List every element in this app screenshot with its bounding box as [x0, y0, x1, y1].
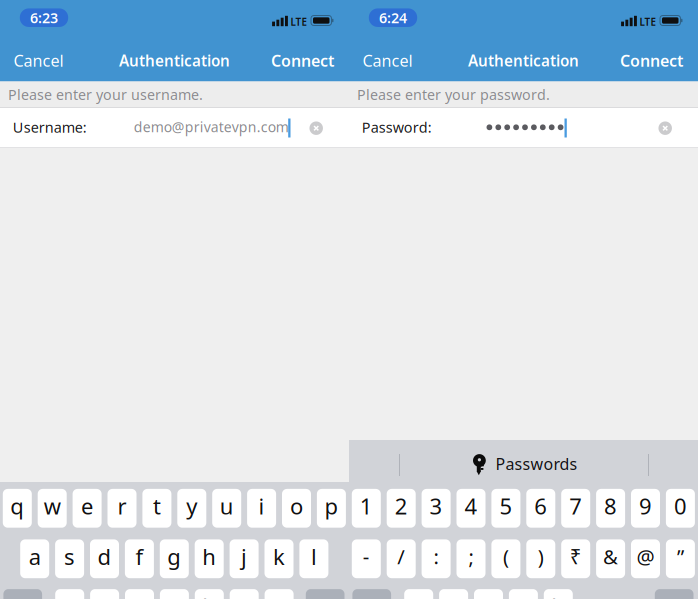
button[interactable]: 8 [596, 489, 625, 528]
button[interactable]: 2 [387, 489, 416, 528]
staticText: ) [538, 543, 544, 570]
button[interactable]: v [160, 589, 189, 599]
staticText: - [363, 543, 370, 570]
button[interactable]: Connect [255, 39, 349, 82]
staticText: 9 [639, 491, 652, 521]
button[interactable]: y [177, 489, 206, 528]
button[interactable]: Connect [604, 39, 698, 82]
button[interactable]: Delete [306, 589, 344, 599]
button[interactable]: Shift [352, 589, 391, 599]
button[interactable]: f [125, 539, 154, 578]
button[interactable]: - [352, 539, 381, 578]
button[interactable]: 4 [456, 489, 485, 528]
button[interactable]: p [317, 489, 346, 528]
button[interactable]: e [73, 489, 102, 528]
staticText: Username: [13, 117, 87, 137]
button[interactable]: 3 [422, 489, 451, 528]
button[interactable]: v [509, 589, 538, 599]
button[interactable]: k [264, 539, 293, 578]
staticText: 6 [534, 491, 547, 521]
staticText: ” [677, 543, 684, 570]
button[interactable]: z [404, 589, 433, 599]
button[interactable]: ( [491, 539, 520, 578]
staticText: j [241, 541, 247, 571]
button[interactable]: 1 [352, 489, 381, 528]
staticText: LTE [639, 15, 656, 29]
staticText: h [202, 541, 216, 571]
staticText: e [81, 491, 93, 521]
button[interactable]: z [55, 589, 84, 599]
staticText: 5 [499, 491, 512, 521]
button[interactable]: c [474, 589, 503, 599]
staticText: p [324, 491, 338, 521]
button[interactable]: @ [631, 539, 660, 578]
staticText: & [603, 543, 618, 570]
button[interactable]: l [299, 539, 328, 578]
staticText: Please enter your username. [8, 85, 203, 104]
button[interactable]: g [160, 539, 189, 578]
button[interactable]: Delete [655, 589, 693, 599]
button[interactable]: w [38, 489, 67, 528]
staticText: q [10, 491, 24, 521]
staticText: a [29, 541, 41, 571]
button[interactable]: : [422, 539, 451, 578]
button[interactable]: 6 [526, 489, 555, 528]
button[interactable]: x [90, 589, 119, 599]
button[interactable]: b [195, 589, 224, 599]
button[interactable]: Passwords [473, 447, 579, 477]
button[interactable]: a [20, 539, 49, 578]
button[interactable]: m [265, 589, 294, 599]
staticText: LTE [290, 15, 307, 29]
button[interactable]: ” [666, 539, 695, 578]
button[interactable]: i [247, 489, 276, 528]
staticText: Authentication [119, 50, 230, 71]
button[interactable]: ₹ [561, 539, 590, 578]
button[interactable]: ; [456, 539, 485, 578]
button[interactable]: q [3, 489, 32, 528]
staticText: Password: [362, 117, 432, 137]
staticText: r [117, 491, 126, 521]
button[interactable]: ) [526, 539, 555, 578]
staticText: g [167, 541, 181, 571]
button[interactable]: Clear text [303, 115, 329, 141]
staticText: 0 [674, 491, 687, 521]
button[interactable]: 0 [666, 489, 695, 528]
button[interactable]: 7 [561, 489, 590, 528]
button[interactable]: s [55, 539, 84, 578]
button[interactable]: b [544, 589, 573, 599]
button[interactable]: h [195, 539, 224, 578]
staticText: : [434, 543, 439, 570]
button[interactable]: / [387, 539, 416, 578]
button[interactable]: Clear text [652, 115, 678, 141]
staticText: 8 [604, 491, 617, 521]
staticText: s [64, 541, 75, 571]
staticText: Passwords [495, 453, 577, 475]
button[interactable]: d [90, 539, 119, 578]
button[interactable]: 9 [631, 489, 660, 528]
button[interactable]: x [439, 589, 468, 599]
staticText: k [273, 541, 285, 571]
staticText: 6:24 [379, 8, 407, 27]
button[interactable]: j [230, 539, 259, 578]
staticText: t [153, 491, 161, 521]
button[interactable]: o [282, 489, 311, 528]
button[interactable]: Shift [3, 589, 42, 599]
staticText: demo@privatevpn.com [134, 117, 289, 136]
button[interactable]: u [212, 489, 241, 528]
button[interactable]: r [107, 489, 136, 528]
button[interactable]: t [142, 489, 171, 528]
button[interactable]: Cancel [348, 39, 426, 82]
button[interactable]: & [596, 539, 625, 578]
button[interactable]: 5 [491, 489, 520, 528]
staticText: ( [503, 543, 509, 570]
button[interactable]: n [230, 589, 259, 599]
button[interactable]: c [125, 589, 154, 599]
button[interactable]: Cancel [0, 39, 77, 82]
